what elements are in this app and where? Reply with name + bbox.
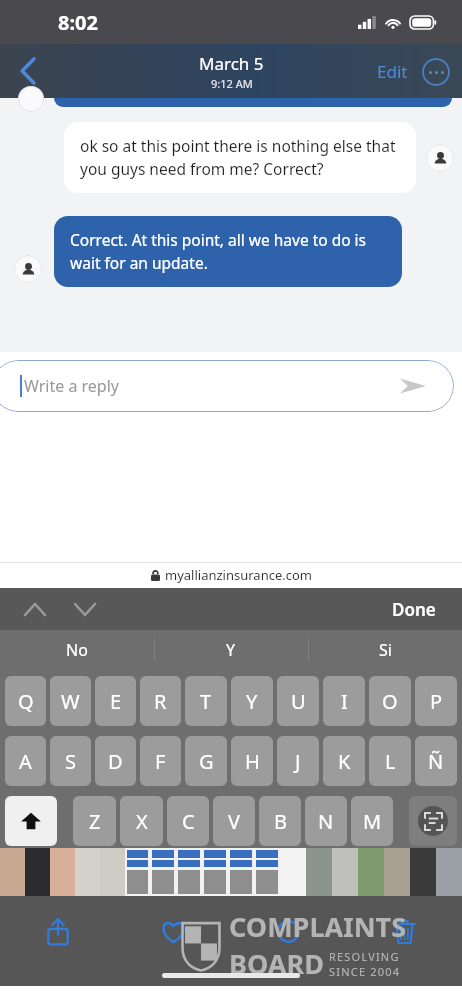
staticText: BOARD	[229, 945, 324, 982]
staticText: E	[110, 688, 122, 715]
staticText: W	[61, 688, 80, 715]
staticText: X	[136, 808, 148, 835]
button[interactable]	[228, 848, 254, 896]
staticText: N	[318, 808, 334, 835]
button[interactable]: More options	[422, 58, 450, 86]
staticText: 9:12 AM	[211, 76, 253, 91]
button[interactable]: W	[50, 676, 91, 726]
staticText: Y	[246, 688, 258, 715]
staticText: No	[66, 639, 88, 661]
button[interactable]: Q	[5, 676, 46, 726]
staticText: U	[291, 688, 306, 715]
button[interactable]: Scan text	[409, 796, 457, 846]
staticText: myallianzinsurance.com	[165, 566, 312, 584]
button[interactable]: Favorite	[152, 910, 194, 952]
staticText: O	[382, 688, 398, 715]
button[interactable]: Correct. At this point, all we have to d…	[54, 216, 402, 287]
button[interactable]: L	[369, 736, 411, 786]
staticText: G	[199, 748, 214, 775]
staticText: P	[430, 688, 443, 715]
button[interactable]: Info	[267, 910, 309, 952]
button[interactable]: S	[50, 736, 91, 786]
button[interactable]: C	[167, 796, 209, 846]
button[interactable]: Delete	[383, 910, 425, 952]
button[interactable]: Write a reply	[0, 360, 454, 412]
staticText: M	[363, 808, 382, 835]
staticText: C	[182, 808, 195, 835]
staticText: L	[385, 748, 396, 775]
staticText: Q	[18, 688, 34, 715]
button[interactable]: J	[277, 736, 319, 786]
button[interactable]: No	[0, 630, 154, 670]
button[interactable]: D	[95, 736, 136, 786]
button[interactable]	[125, 848, 150, 896]
button[interactable]: U	[277, 676, 319, 726]
button[interactable]: Back	[6, 49, 50, 93]
button[interactable]: E	[95, 676, 136, 726]
button[interactable]: Share	[37, 910, 79, 952]
button[interactable]: P	[415, 676, 457, 726]
staticText: K	[338, 748, 351, 775]
button[interactable]: G	[185, 736, 227, 786]
button[interactable]: K	[323, 736, 365, 786]
staticText: F	[155, 748, 166, 775]
staticText: S	[65, 748, 76, 775]
staticText: Write a reply	[24, 375, 119, 397]
button[interactable]: Y	[231, 676, 273, 726]
button[interactable]: Ñ	[415, 736, 457, 786]
button[interactable]: O	[369, 676, 411, 726]
button[interactable]: Shift	[5, 796, 57, 846]
button[interactable]: Previous field	[18, 592, 52, 626]
staticText: T	[200, 688, 212, 715]
staticText: V	[228, 808, 240, 835]
button[interactable]: M	[351, 796, 393, 846]
button[interactable]: Done	[386, 592, 442, 627]
staticText: COMPLAINTS	[229, 908, 407, 945]
button[interactable]: Edit	[373, 54, 412, 89]
button[interactable]: F	[140, 736, 181, 786]
staticText: Correct. At this point, all we have to d…	[70, 229, 386, 274]
button[interactable]: ok so at this point there is nothing els…	[64, 122, 416, 193]
button[interactable]	[150, 848, 176, 896]
button[interactable]: B	[259, 796, 301, 846]
staticText: ok so at this point there is nothing els…	[80, 135, 400, 180]
staticText: Done	[392, 598, 436, 621]
staticText: A	[19, 748, 32, 775]
staticText: SINCE 2004	[329, 964, 401, 979]
staticText: Z	[89, 808, 101, 835]
staticText: B	[274, 808, 287, 835]
button[interactable]	[202, 848, 228, 896]
button[interactable]: Y	[154, 630, 308, 670]
staticText: H	[245, 748, 260, 775]
staticText: RESOLVING	[329, 949, 400, 964]
button[interactable]: X	[120, 796, 163, 846]
button[interactable]: Si	[308, 630, 462, 670]
button[interactable]: N	[305, 796, 347, 846]
staticText: Ñ	[428, 748, 444, 775]
button[interactable]: V	[213, 796, 255, 846]
button[interactable]: H	[231, 736, 273, 786]
button[interactable]	[176, 848, 202, 896]
button[interactable]: R	[140, 676, 181, 726]
button[interactable]: A	[5, 736, 46, 786]
staticText: D	[108, 748, 123, 775]
staticText: March 5	[199, 52, 264, 75]
button[interactable]: Next field	[68, 592, 102, 626]
button[interactable]: T	[185, 676, 227, 726]
button[interactable]	[254, 848, 280, 896]
button[interactable]: Z	[73, 796, 116, 846]
button[interactable]: I	[323, 676, 365, 726]
staticText: J	[295, 748, 301, 775]
